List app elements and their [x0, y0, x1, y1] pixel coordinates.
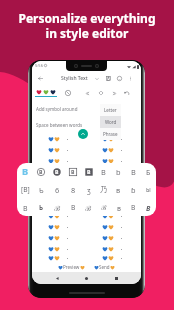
button[interactable] — [86, 136, 141, 142]
button[interactable] — [32, 255, 86, 261]
button[interactable]: B — [65, 199, 81, 216]
button[interactable]: Expand — [91, 73, 102, 84]
button[interactable]: Back — [35, 73, 46, 84]
staticText: Б — [146, 167, 151, 177]
staticText: Ь — [39, 203, 44, 212]
button[interactable]: Undo — [122, 88, 132, 98]
staticText: 8 — [71, 185, 76, 195]
button[interactable] — [86, 147, 141, 153]
button[interactable]: Scroll to top — [78, 129, 88, 139]
button[interactable]: ℬ — [49, 199, 65, 216]
staticText: Personalize everything in style editor — [0, 10, 174, 41]
button[interactable]: B — [81, 163, 96, 180]
button[interactable] — [32, 235, 86, 241]
staticText: в — [117, 203, 121, 213]
button[interactable] — [86, 169, 141, 175]
staticText: B — [23, 203, 28, 213]
button[interactable] — [32, 246, 86, 252]
button[interactable]: Save — [103, 73, 114, 84]
button[interactable]: Send — [92, 264, 117, 270]
staticText: ɓ — [131, 185, 136, 195]
button[interactable]: B — [126, 163, 141, 180]
button[interactable]: Б — [141, 163, 156, 180]
button[interactable] — [32, 224, 86, 230]
staticText: Stylish Text — [61, 75, 88, 82]
button[interactable] — [32, 158, 86, 164]
staticText: B — [71, 203, 76, 212]
staticText: Space between words — [36, 122, 83, 128]
button[interactable]: Previous style — [82, 88, 92, 98]
staticText: B — [87, 168, 91, 175]
button[interactable]: b — [111, 163, 126, 180]
staticText: B — [131, 167, 136, 177]
staticText: 6 — [55, 185, 60, 195]
button[interactable]: Word — [100, 116, 121, 128]
staticText: Send — [99, 264, 110, 270]
button[interactable] — [35, 89, 57, 97]
staticText: B — [101, 167, 106, 177]
button[interactable]: Add symbol around — [36, 101, 137, 117]
button[interactable] — [86, 213, 141, 219]
button[interactable]: ы — [141, 181, 156, 198]
staticText: Phrase — [103, 131, 118, 137]
button[interactable]: B — [126, 199, 141, 216]
button[interactable] — [86, 224, 141, 230]
button[interactable] — [86, 246, 141, 252]
button[interactable]: в — [111, 199, 126, 216]
button[interactable]: Back — [53, 274, 62, 283]
button[interactable]: ɓ — [126, 181, 141, 198]
button[interactable]: 6 — [49, 181, 65, 198]
button[interactable]: ӡ — [81, 181, 96, 198]
button[interactable]: More options — [125, 73, 136, 84]
button[interactable]: 8 — [65, 181, 81, 198]
button[interactable]: Letter — [100, 104, 121, 116]
button[interactable] — [86, 158, 141, 164]
staticText: B — [55, 168, 59, 175]
button[interactable]: Clear formatting — [63, 88, 73, 98]
staticText: ℬ — [85, 203, 92, 213]
button[interactable]: Next style — [109, 88, 119, 98]
button[interactable]: B — [96, 163, 111, 180]
button[interactable] — [32, 147, 86, 153]
button[interactable] — [86, 235, 141, 241]
staticText: B — [39, 168, 43, 175]
button[interactable]: B — [17, 163, 33, 180]
button[interactable] — [86, 202, 141, 208]
button[interactable]: B — [141, 199, 156, 216]
button[interactable]: B — [49, 163, 65, 180]
button[interactable] — [86, 191, 141, 197]
staticText: 乃 — [100, 185, 108, 194]
staticText: b — [116, 167, 121, 177]
button[interactable]: B — [65, 163, 81, 180]
button[interactable]: Ь — [33, 199, 49, 216]
button[interactable]: 乃 — [96, 181, 111, 198]
button[interactable]: ℬ — [96, 199, 111, 216]
staticText: B — [22, 165, 29, 178]
button[interactable]: Ƅ — [33, 181, 49, 198]
button[interactable] — [32, 136, 86, 142]
button[interactable] — [32, 202, 86, 208]
staticText: Ƅ — [39, 185, 44, 195]
staticText: B — [71, 168, 75, 175]
button[interactable]: Space between words — [36, 117, 137, 133]
staticText: 5:56 — [35, 63, 43, 68]
button[interactable]: ℬ — [81, 199, 96, 216]
button[interactable]: в — [111, 181, 126, 198]
button[interactable]: Home — [82, 274, 91, 283]
button[interactable]: Preview — [56, 264, 87, 270]
button[interactable]: [B] — [17, 181, 33, 198]
button[interactable] — [32, 169, 86, 175]
staticText: ℬ — [54, 203, 61, 213]
button[interactable] — [32, 191, 86, 197]
button[interactable]: Phrase — [100, 128, 121, 140]
button[interactable]: Brackets — [96, 88, 106, 98]
button[interactable] — [32, 213, 86, 219]
button[interactable]: Help — [114, 73, 125, 84]
staticText: Word — [105, 119, 117, 125]
button[interactable]: B — [33, 163, 49, 180]
button[interactable]: Recent apps — [112, 274, 121, 283]
button[interactable]: B — [17, 199, 33, 216]
button[interactable] — [86, 255, 141, 261]
